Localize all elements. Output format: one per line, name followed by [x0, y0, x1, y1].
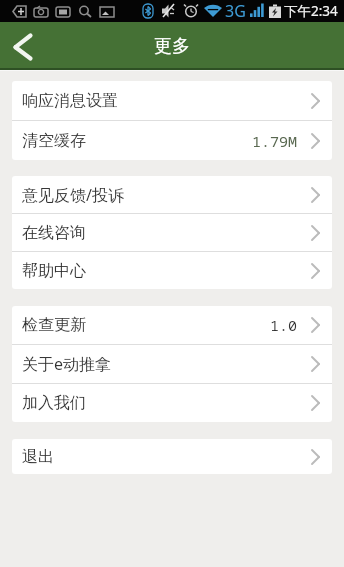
button[interactable]: 清空缓存: [12, 121, 332, 160]
staticText: 清空缓存: [22, 131, 86, 151]
staticText: 关于e动推拿: [22, 353, 112, 375]
button[interactable]: 关于e动推拿: [12, 345, 332, 383]
staticText: 更多: [154, 35, 190, 58]
staticText: 加入我们: [22, 393, 86, 413]
staticText: 3G: [225, 0, 246, 22]
staticText: 下午2:34: [284, 2, 338, 20]
staticText: 响应消息设置: [22, 91, 118, 111]
staticText: 在线咨询: [22, 223, 86, 243]
button[interactable]: 加入我们: [12, 384, 332, 422]
staticText: 退出: [22, 447, 54, 467]
staticText: 帮助中心: [22, 261, 86, 281]
staticText: 意见反馈/投诉: [22, 184, 124, 206]
button[interactable]: 意见反馈/投诉: [12, 176, 332, 213]
staticText: 1.0: [270, 315, 298, 335]
button[interactable]: 退出: [12, 439, 332, 474]
button[interactable]: 检查更新: [12, 306, 332, 344]
staticText: 1.79M: [252, 131, 298, 151]
button[interactable]: 在线咨询: [12, 214, 332, 251]
button[interactable]: 响应消息设置: [12, 81, 332, 120]
button[interactable]: 帮助中心: [12, 252, 332, 289]
staticText: 检查更新: [22, 315, 86, 335]
button[interactable]: Back: [0, 22, 46, 68]
